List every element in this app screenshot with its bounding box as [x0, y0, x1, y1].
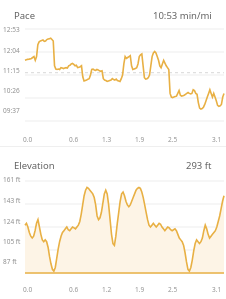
staticText: 1.9 [135, 135, 145, 144]
button[interactable]: Elevation [0, 150, 226, 175]
staticText: 12:53 [3, 25, 20, 34]
button[interactable]: Elevation chart [0, 175, 226, 283]
staticText: 87 ft [3, 257, 17, 266]
staticText: 293 ft [186, 159, 212, 172]
staticText: 0.6 [69, 135, 79, 144]
staticText: 09:37 [3, 106, 20, 115]
button[interactable]: Pace chart [0, 25, 226, 133]
staticText: 1.2 [102, 285, 112, 294]
staticText: 143 ft [3, 196, 21, 205]
staticText: 3.1 [212, 135, 222, 144]
staticText: 161 ft [3, 175, 21, 184]
staticText: 10:53 min/mi [153, 9, 212, 22]
staticText: 10:26 [3, 86, 20, 95]
staticText: 1.9 [135, 285, 145, 294]
button[interactable]: Pace [0, 0, 226, 25]
staticText: 1.3 [102, 135, 112, 144]
staticText: 11:15 [3, 66, 20, 75]
staticText: 2.5 [168, 135, 178, 144]
staticText: 105 ft [3, 237, 21, 246]
staticText: 0.0 [23, 135, 33, 144]
staticText: 12:04 [3, 46, 20, 55]
staticText: 3.1 [212, 285, 222, 294]
staticText: 0.6 [69, 285, 79, 294]
staticText: 0.0 [23, 285, 33, 294]
staticText: 124 ft [3, 217, 21, 226]
staticText: Elevation [14, 159, 55, 172]
staticText: Pace [14, 9, 35, 22]
staticText: 2.5 [168, 285, 178, 294]
